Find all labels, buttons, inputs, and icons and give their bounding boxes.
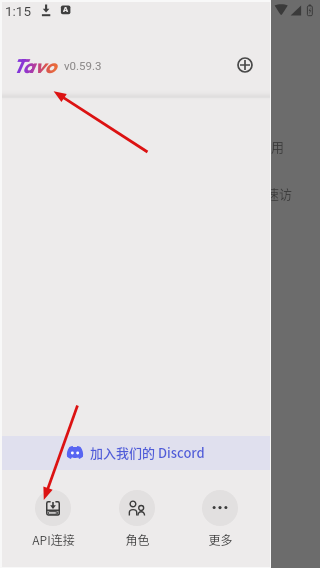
staticText: v0.59.3 [64,59,102,72]
staticText: 1:15 [5,3,32,19]
staticText: 角色 [125,531,150,548]
staticText: 用 [271,137,285,156]
staticText: 速访 [266,184,293,203]
staticText: 加入我们的 Discord [90,443,205,462]
staticText: API连接 [32,531,75,548]
staticText: A [63,5,69,14]
button[interactable]: Add [233,53,257,77]
staticText: Tavo [12,53,56,78]
button[interactable]: More [184,484,256,548]
staticText: 更多 [208,531,233,548]
button[interactable] [2,436,270,470]
button[interactable]: API connection [17,484,89,548]
button[interactable]: Roles [101,484,173,548]
